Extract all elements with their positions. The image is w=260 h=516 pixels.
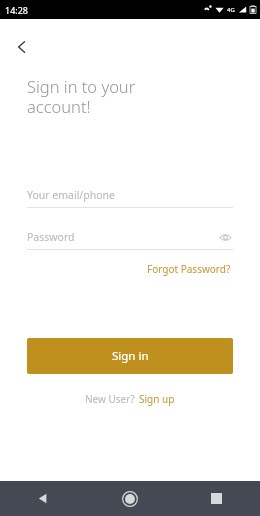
button[interactable]: Forgot Password? [145, 259, 233, 279]
button[interactable]: Password [27, 228, 233, 250]
staticText: Forgot Password? [147, 262, 231, 276]
staticText: New User? [85, 392, 138, 406]
button[interactable]: Your email/phone [27, 186, 233, 208]
button[interactable]: Show password [217, 229, 233, 245]
staticText: Your email/phone [27, 188, 233, 202]
staticText: Sign up [139, 392, 175, 406]
staticText: Password [27, 230, 217, 244]
staticText: 14:28 [5, 4, 29, 16]
staticText: 4G [227, 6, 235, 14]
button[interactable]: Sign up [138, 390, 176, 408]
button[interactable]: Recent apps [173, 481, 260, 516]
button[interactable]: Back [0, 481, 86, 516]
button[interactable]: Home [86, 481, 173, 516]
button[interactable]: Sign in [27, 338, 233, 374]
staticText: Sign in [112, 348, 149, 364]
staticText: Sign in to your account! [27, 75, 136, 118]
button[interactable]: Back [4, 29, 40, 65]
